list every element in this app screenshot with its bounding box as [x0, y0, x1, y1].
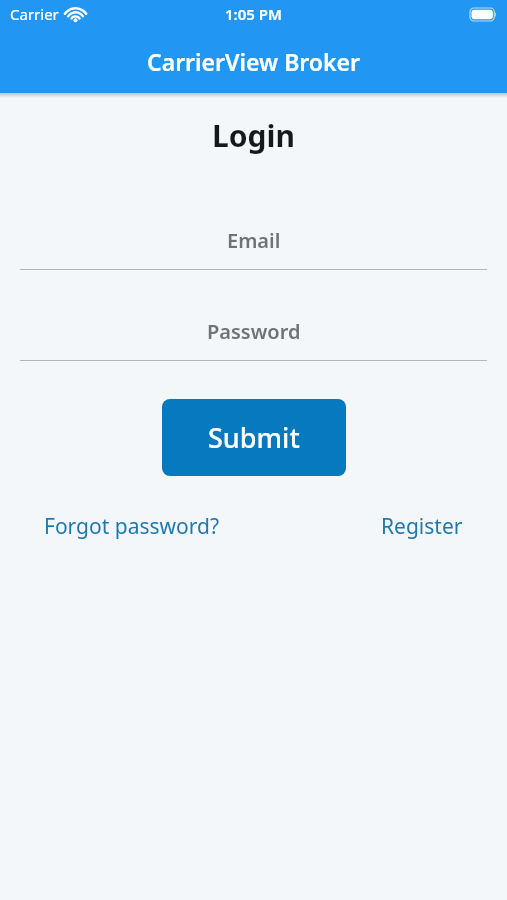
staticText: Login [212, 115, 295, 156]
staticText: Carrier [10, 4, 59, 24]
staticText: Email [227, 227, 281, 254]
staticText: 1:05 PM [225, 4, 282, 24]
staticText: Submit [208, 419, 300, 456]
staticText: Password [207, 318, 301, 345]
button[interactable]: Submit [162, 399, 346, 476]
staticText: CarrierView Broker [147, 46, 360, 77]
button[interactable]: Register [381, 512, 463, 541]
button[interactable]: Forgot password? [44, 512, 220, 541]
